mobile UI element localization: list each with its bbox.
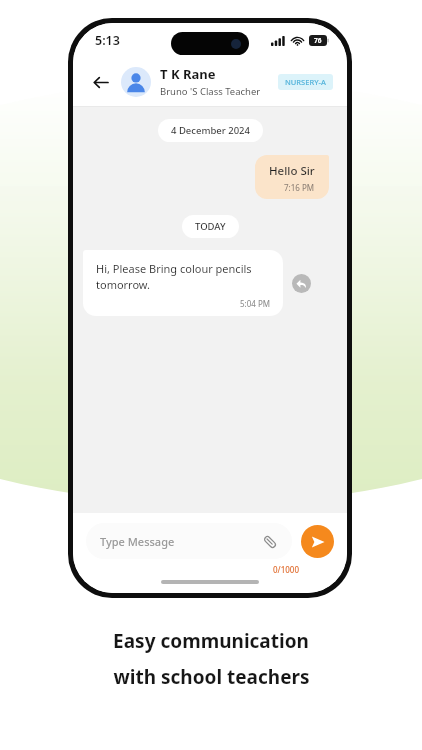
button[interactable]: Attach file <box>261 533 278 550</box>
staticText: Hello Sir <box>269 163 315 179</box>
button[interactable]: NURSERY-A <box>278 74 333 90</box>
staticText: 4 December 2024 <box>171 124 250 137</box>
staticText: with school teachers <box>113 664 310 690</box>
staticText: TODAY <box>195 220 226 233</box>
button[interactable]: Send <box>301 525 334 558</box>
staticText: Type Message <box>100 534 261 549</box>
staticText: 5:13 <box>95 32 120 49</box>
button[interactable]: Reply <box>292 274 311 293</box>
staticText: Easy communication <box>113 628 309 654</box>
staticText: 76 <box>314 36 322 45</box>
staticText: T K Rane <box>160 65 216 83</box>
button[interactable]: Back <box>87 69 113 95</box>
button[interactable]: Type Message <box>86 523 292 559</box>
staticText: 5:04 PM <box>96 298 270 309</box>
staticText: 7:16 PM <box>284 182 315 193</box>
staticText: 0/1000 <box>73 564 299 575</box>
button[interactable]: Hi, Please Bring colour pencils tomorrow… <box>83 250 283 316</box>
staticText: Bruno 'S Class Teacher <box>160 85 261 98</box>
button[interactable]: Hello Sir <box>255 155 329 199</box>
staticText: Hi, Please Bring colour pencils tomorrow… <box>96 261 252 293</box>
staticText: NURSERY-A <box>285 77 326 87</box>
